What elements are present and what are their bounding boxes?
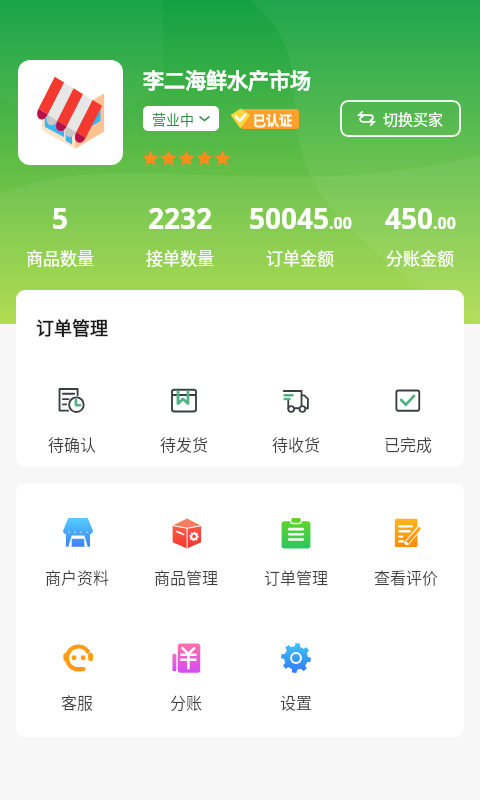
button[interactable]: 5 [0,199,120,270]
button[interactable]: 客服 [23,642,132,713]
button[interactable]: 营业中 [143,106,219,131]
staticText: 李二海鲜水产市场 [143,64,311,94]
staticText: 接单数量 [146,245,214,270]
staticText: 商户资料 [45,565,110,588]
staticText: 待发货 [160,432,209,455]
staticText: 订单管理 [36,314,108,340]
staticText: 分账 [170,690,203,713]
staticText: 订单金额 [266,245,334,270]
staticText: 分账金额 [386,245,454,270]
button[interactable]: 设置 [241,642,351,713]
button[interactable]: 50045.00 [240,199,360,270]
button[interactable]: 查看评价 [351,517,461,588]
button[interactable]: 待确认 [16,384,128,455]
button[interactable]: 订单管理 [241,517,351,588]
button[interactable]: 已完成 [352,384,464,455]
staticText: 营业中 [152,109,194,129]
staticText: 切换买家 [383,108,444,130]
staticText: 待收货 [272,432,321,455]
button[interactable]: 已认证 Verified [230,108,299,129]
button[interactable]: Shop logo [18,60,123,165]
staticText: 订单管理 [264,565,329,588]
staticText: 已认证 [253,110,293,129]
staticText: 50045.00 [249,199,352,237]
button[interactable]: 450.00 [360,199,480,270]
staticText: 设置 [280,690,313,713]
button[interactable]: 2232 [120,199,240,270]
button[interactable]: 待发货 [128,384,240,455]
button[interactable]: 待收货 [240,384,352,455]
staticText: 待确认 [48,432,97,455]
staticText: 查看评价 [374,565,439,588]
button[interactable]: 商户资料 [23,517,132,588]
staticText: 已完成 [384,432,433,455]
staticText: 450.00 [385,199,456,237]
staticText: 5 [52,199,69,237]
button[interactable]: 切换买家 [340,100,461,137]
button[interactable]: 商品管理 [132,517,241,588]
staticText: 2232 [148,199,213,237]
staticText: 客服 [61,690,94,713]
button[interactable]: 分账 [132,642,241,713]
staticText: 商品管理 [154,565,219,588]
staticText: 商品数量 [26,245,94,270]
